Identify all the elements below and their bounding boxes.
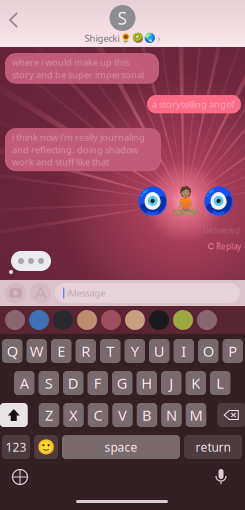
button[interactable]: X: [63, 403, 84, 427]
button[interactable]: N: [161, 403, 182, 427]
button[interactable]: Shift: [0, 403, 28, 427]
button[interactable]: O: [198, 339, 218, 363]
staticText: N: [166, 405, 177, 425]
staticText: V: [118, 405, 127, 425]
button[interactable]: Delete: [217, 403, 245, 427]
button[interactable]: App 3: [53, 310, 73, 330]
staticText: Shigecki: [84, 32, 119, 44]
staticText: space: [104, 439, 137, 455]
button[interactable]: L: [210, 371, 230, 395]
staticText: Y: [131, 341, 139, 361]
staticText: 🌻🥝🌏: [119, 33, 155, 44]
button[interactable]: G: [112, 371, 132, 395]
button[interactable]: return: [184, 435, 242, 459]
button[interactable]: R: [75, 339, 96, 363]
staticText: X: [69, 405, 78, 425]
button[interactable]: D: [63, 371, 83, 395]
button[interactable]: Y: [124, 339, 145, 363]
button[interactable]: F: [87, 371, 108, 395]
button[interactable]: B: [137, 403, 157, 427]
staticText: Replay: [216, 241, 241, 252]
button[interactable]: Camera: [5, 282, 26, 303]
staticText: O: [203, 341, 214, 361]
button[interactable]: M: [186, 403, 206, 427]
staticText: D: [68, 373, 79, 393]
button[interactable]: App 9: [197, 310, 217, 330]
staticText: U: [154, 341, 165, 361]
button[interactable]: space: [62, 435, 180, 459]
button[interactable]: App 5: [101, 310, 121, 330]
button[interactable]: App 2: [29, 310, 49, 330]
staticText: Z: [45, 405, 53, 425]
button[interactable]: App 4: [77, 310, 97, 330]
button[interactable]: P: [222, 339, 243, 363]
button[interactable]: C: [88, 403, 108, 427]
button[interactable]: V: [112, 403, 133, 427]
staticText: L: [216, 373, 224, 393]
staticText: S: [45, 373, 53, 393]
staticText: i think now i'm really journaling and re…: [12, 131, 145, 168]
button[interactable]: K: [185, 371, 206, 395]
button[interactable]: E: [51, 339, 71, 363]
button[interactable]: W: [26, 339, 47, 363]
staticText: A: [20, 373, 29, 393]
staticText: 123: [5, 439, 26, 455]
button[interactable]: H: [136, 371, 157, 395]
staticText: a storytelling angel!: [152, 98, 236, 110]
button[interactable]: Emoji: [34, 435, 58, 459]
staticText: return: [195, 439, 230, 455]
button[interactable]: Dictate: [208, 464, 234, 490]
button[interactable]: App 7: [149, 310, 169, 330]
staticText: Q: [7, 341, 18, 361]
button[interactable]: A: [14, 371, 34, 395]
staticText: where i would make up this story and be …: [12, 56, 144, 81]
staticText: R: [81, 341, 90, 361]
button[interactable]: J: [161, 371, 181, 395]
staticText: I: [181, 341, 186, 361]
staticText: M: [189, 405, 202, 425]
button[interactable]: 123: [2, 435, 30, 459]
staticText: S: [117, 6, 127, 29]
staticText: iMessage: [64, 287, 105, 299]
staticText: K: [191, 373, 200, 393]
staticText: P: [228, 341, 237, 361]
staticText: H: [141, 373, 152, 393]
button[interactable]: Back: [0, 5, 30, 35]
staticText: 🙂: [37, 439, 55, 455]
button[interactable]: App 1: [5, 310, 25, 330]
button[interactable]: Z: [39, 403, 59, 427]
button[interactable]: S: [84, 5, 160, 44]
button[interactable]: App 6: [125, 310, 145, 330]
button[interactable]: iMessage: [55, 283, 240, 303]
button[interactable]: Q: [2, 339, 22, 363]
staticText: F: [94, 373, 102, 393]
button[interactable]: Switch keyboard: [7, 464, 33, 490]
staticText: T: [106, 341, 114, 361]
button[interactable]: Replay: [208, 241, 241, 252]
button[interactable]: App Store: [30, 282, 51, 303]
button[interactable]: T: [100, 339, 120, 363]
button[interactable]: I: [173, 339, 194, 363]
staticText: ›: [155, 32, 160, 44]
button[interactable]: App 8: [173, 310, 193, 330]
staticText: J: [169, 373, 173, 393]
staticText: W: [30, 341, 44, 361]
staticText: G: [117, 373, 128, 393]
staticText: E: [57, 341, 65, 361]
staticText: C: [93, 405, 102, 425]
staticText: B: [142, 405, 152, 425]
staticText: Delivered: [203, 225, 240, 236]
button[interactable]: U: [149, 339, 169, 363]
button[interactable]: S: [38, 371, 59, 395]
staticText: 🧿🧘🏽🧿: [136, 186, 235, 216]
